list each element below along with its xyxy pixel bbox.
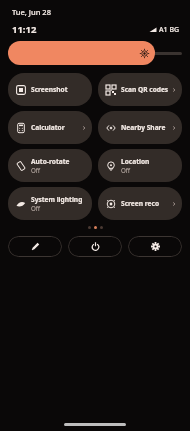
staticText: Tue, Jun 28 (12, 7, 51, 17)
button[interactable]: Location (98, 149, 182, 182)
button[interactable]: Auto-rotate (8, 149, 92, 182)
staticText: A1 BG (159, 25, 180, 35)
button[interactable]: Power (68, 236, 122, 257)
staticText: Off (121, 166, 131, 174)
staticText: Scan QR codes (121, 85, 169, 94)
button[interactable]: System lighting (8, 187, 92, 220)
button[interactable]: Scan QR codes (98, 73, 182, 106)
staticText: Calculator (31, 123, 65, 132)
staticText: Nearby Share (121, 123, 166, 132)
staticText: 11:12 (12, 23, 37, 36)
button[interactable]: Screen reco (98, 187, 182, 220)
button[interactable]: Calculator (8, 111, 92, 144)
button[interactable]: Brightness (8, 41, 182, 65)
staticText: Off (31, 204, 41, 212)
button[interactable]: Nearby Share (98, 111, 182, 144)
staticText: Screen reco (121, 199, 159, 208)
staticText: Off (31, 166, 41, 174)
button[interactable]: Edit (8, 236, 62, 257)
staticText: Auto-rotate (31, 157, 70, 166)
button[interactable]: Screenshot (8, 73, 92, 106)
staticText: Location (121, 157, 150, 166)
staticText: Screenshot (31, 85, 68, 94)
staticText: System lighting (31, 195, 83, 204)
button[interactable]: Settings (128, 236, 182, 257)
